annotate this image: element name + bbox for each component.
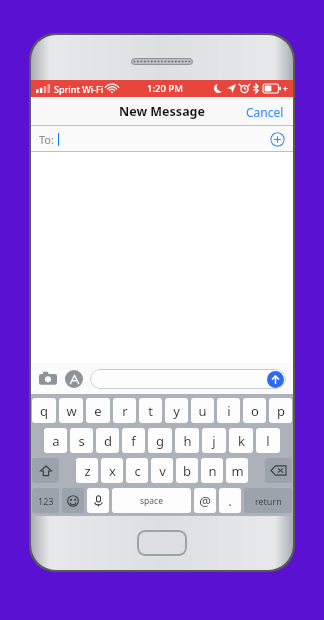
button[interactable]: return xyxy=(244,488,292,513)
staticText: New Message xyxy=(119,103,205,120)
staticText: q xyxy=(40,402,48,420)
staticText: u xyxy=(198,402,207,420)
button[interactable]: j xyxy=(202,428,226,453)
button[interactable]: t xyxy=(139,398,162,423)
staticText: t xyxy=(148,402,153,420)
button[interactable]: Add contact xyxy=(270,132,285,147)
staticText: s xyxy=(78,432,85,450)
button[interactable]: Key xyxy=(32,458,59,483)
staticText: b xyxy=(183,462,191,480)
staticText: y xyxy=(173,402,180,420)
staticText: Cancel xyxy=(246,104,284,120)
button[interactable]: s xyxy=(70,428,93,453)
staticText: f xyxy=(131,432,136,450)
button[interactable]: z xyxy=(76,458,98,483)
staticText: d xyxy=(104,432,112,450)
button[interactable]: n xyxy=(201,458,223,483)
button[interactable]: Key xyxy=(265,458,292,483)
button[interactable]: b xyxy=(176,458,198,483)
staticText: To: xyxy=(39,132,54,147)
button[interactable]: g xyxy=(148,428,172,453)
button[interactable]: m xyxy=(226,458,248,483)
button[interactable]: d xyxy=(96,428,119,453)
staticText: k xyxy=(238,432,245,450)
staticText: a xyxy=(52,432,60,450)
button[interactable]: Send xyxy=(90,369,286,389)
staticText: 1:20 PM xyxy=(147,82,183,95)
button[interactable]: l xyxy=(256,428,280,453)
staticText: n xyxy=(208,462,217,480)
button[interactable]: p xyxy=(269,398,292,423)
button[interactable]: Dictate xyxy=(87,488,109,513)
button[interactable]: @ xyxy=(194,488,216,513)
button[interactable]: space xyxy=(112,488,191,513)
staticText: z xyxy=(84,462,91,480)
button[interactable]: . xyxy=(219,488,241,513)
button[interactable]: f xyxy=(122,428,145,453)
staticText: e xyxy=(94,402,102,420)
button[interactable]: x xyxy=(101,458,123,483)
staticText: c xyxy=(134,462,141,480)
button[interactable]: h xyxy=(175,428,199,453)
button[interactable]: i xyxy=(217,398,240,423)
button[interactable]: Key xyxy=(62,488,84,513)
button[interactable]: a xyxy=(44,428,67,453)
button[interactable]: v xyxy=(151,458,173,483)
staticText: g xyxy=(156,432,164,450)
staticText: h xyxy=(183,432,192,450)
button[interactable]: 123 xyxy=(32,488,59,513)
button[interactable]: w xyxy=(59,398,83,423)
staticText: r xyxy=(122,402,128,420)
button[interactable]: Send xyxy=(267,371,284,388)
staticText: x xyxy=(109,462,116,480)
button[interactable]: Cancel xyxy=(237,97,293,126)
staticText: l xyxy=(266,432,270,450)
staticText: m xyxy=(231,462,244,480)
button[interactable]: c xyxy=(126,458,148,483)
staticText: 123 xyxy=(38,495,54,507)
staticText: + xyxy=(283,83,288,94)
staticText: i xyxy=(227,402,231,420)
button[interactable]: Camera xyxy=(38,369,58,389)
staticText: return xyxy=(255,495,282,507)
button[interactable]: y xyxy=(165,398,188,423)
staticText: @ xyxy=(199,492,211,510)
staticText: Sprint Wi-Fi xyxy=(54,83,104,95)
button[interactable]: e xyxy=(86,398,110,423)
staticText: o xyxy=(251,402,259,420)
button[interactable]: r xyxy=(113,398,136,423)
staticText: j xyxy=(212,432,216,450)
staticText: space xyxy=(140,495,163,507)
button[interactable]: k xyxy=(229,428,253,453)
button[interactable]: Home xyxy=(137,530,187,556)
staticText: p xyxy=(277,402,285,420)
button[interactable]: u xyxy=(191,398,214,423)
button[interactable]: o xyxy=(243,398,266,423)
button[interactable]: App Store xyxy=(65,370,83,388)
staticText: w xyxy=(66,402,77,420)
staticText: v xyxy=(159,462,166,480)
staticText: . xyxy=(228,492,232,510)
button[interactable]: q xyxy=(32,398,56,423)
